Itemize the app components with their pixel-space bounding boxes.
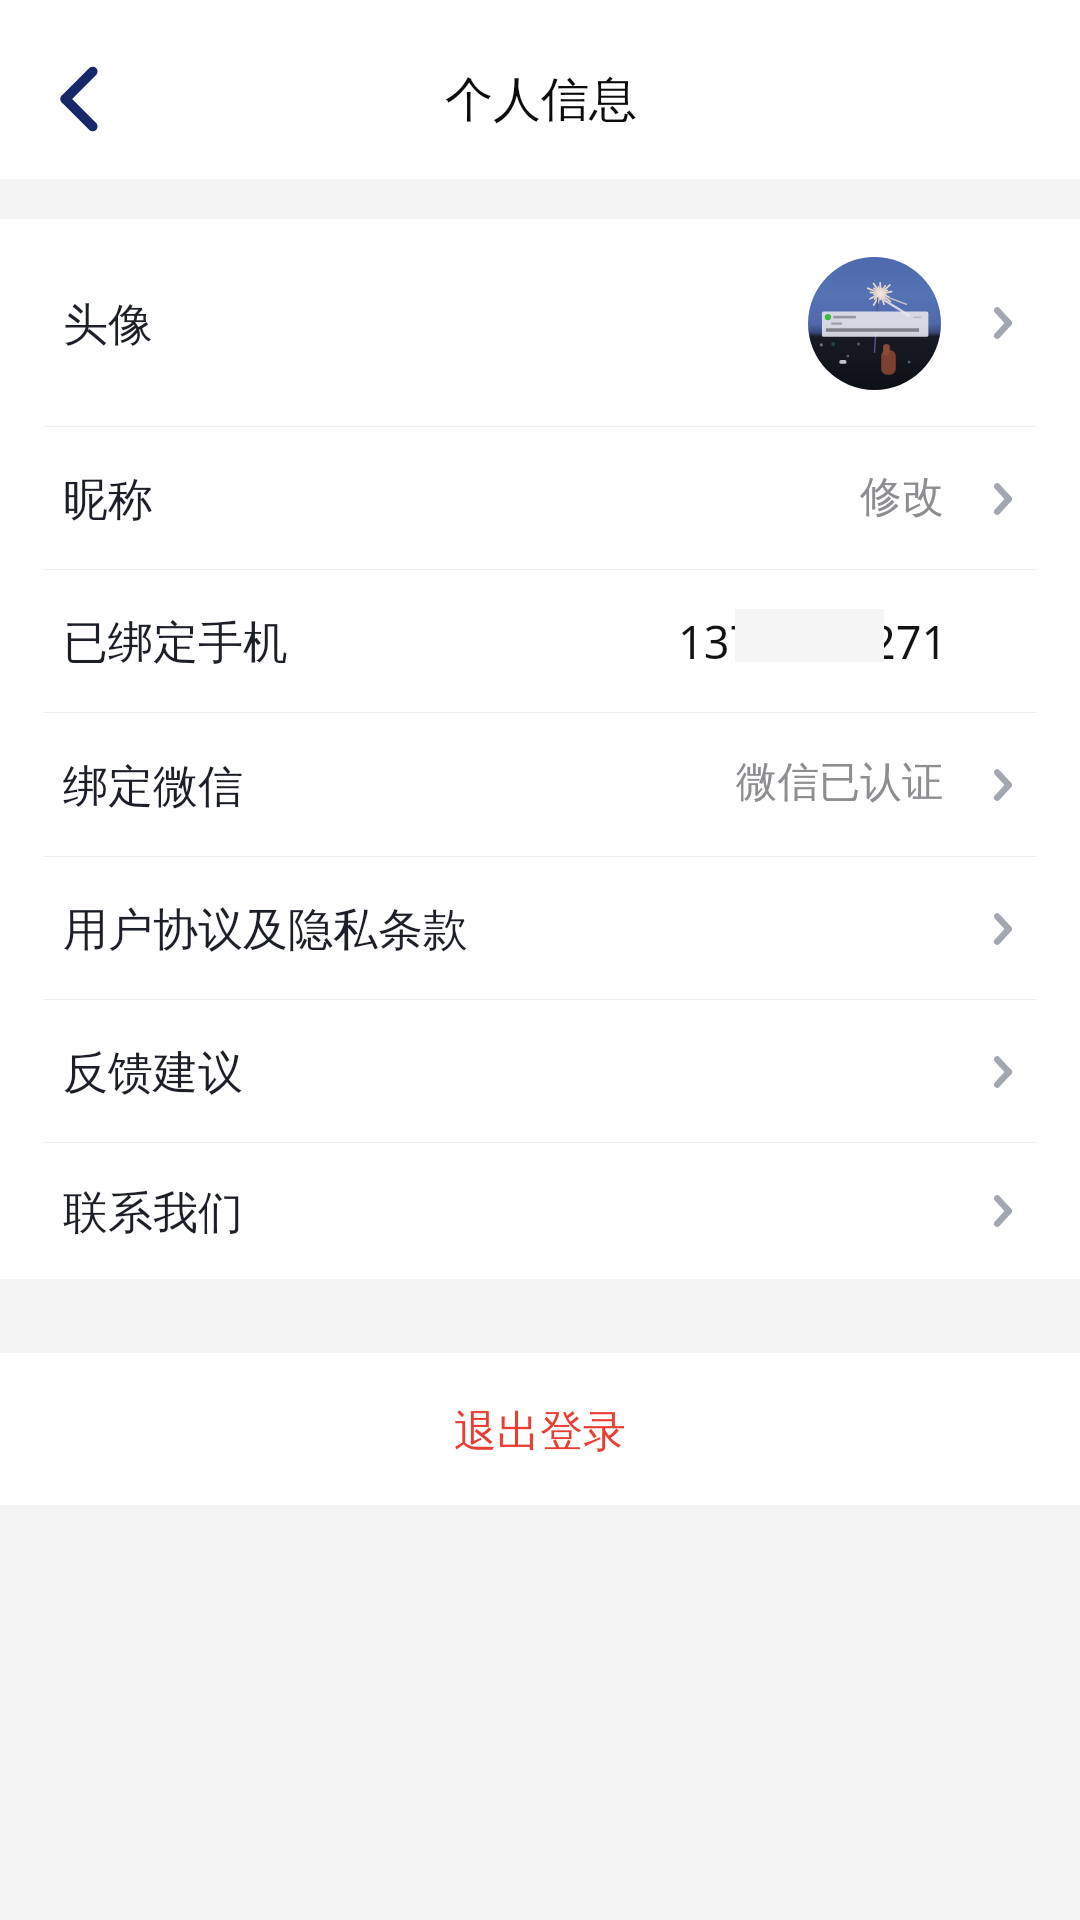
button[interactable]: 绑定微信 [0,713,1080,857]
staticText: 绑定微信 [63,759,243,816]
staticText: 联系我们 [63,1185,243,1242]
staticText: 137 [678,611,756,672]
staticText: 个人信息 [445,70,637,130]
staticText: 头像 [63,297,153,354]
button[interactable]: Back [29,49,129,149]
staticText: 退出登录 [454,1405,626,1459]
staticText: 微信已认证 [736,756,944,808]
button[interactable]: 反馈建议 [0,1000,1080,1143]
staticText: 已绑定手机 [63,615,288,672]
button[interactable]: 头像 [0,219,1080,427]
button[interactable]: 联系我们 [0,1143,1080,1279]
button[interactable]: 用户协议及隐私条款 [0,857,1080,1000]
button[interactable]: 昵称 [0,427,1080,570]
staticText: 271 [870,611,948,672]
button[interactable]: 已绑定手机 [0,570,1080,713]
staticText: 昵称 [63,472,153,529]
button[interactable]: 退出登录 [0,1353,1080,1505]
staticText: 反馈建议 [63,1045,243,1102]
staticText: 用户协议及隐私条款 [63,902,468,959]
staticText: 修改 [860,471,944,524]
